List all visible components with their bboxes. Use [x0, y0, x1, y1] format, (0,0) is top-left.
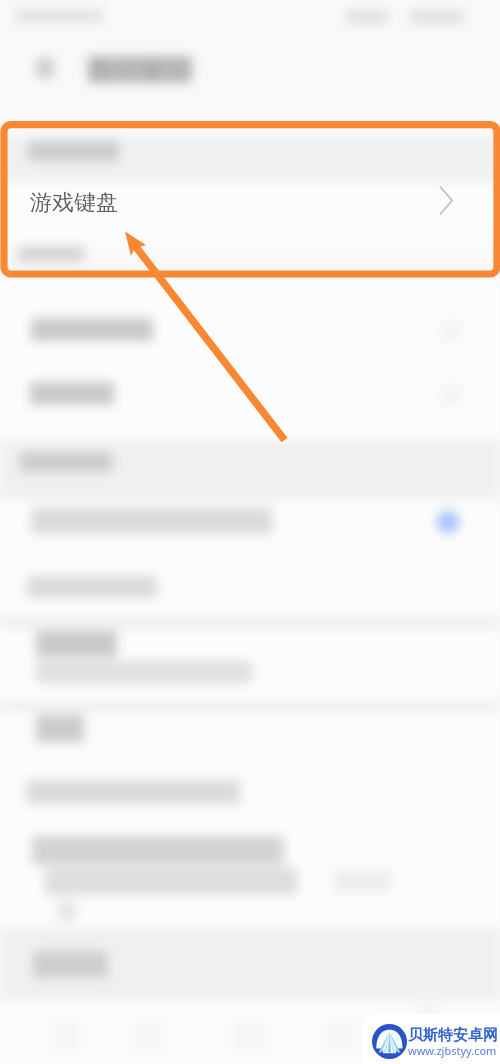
staticText: www.zjbstyy.com [408, 1043, 497, 1058]
other: Open game keyboard settings [438, 185, 455, 216]
staticText: 贝斯特安卓网 [408, 1026, 498, 1045]
staticText: 游戏键盘 [30, 189, 118, 217]
button[interactable]: 游戏键盘 [0, 176, 500, 244]
